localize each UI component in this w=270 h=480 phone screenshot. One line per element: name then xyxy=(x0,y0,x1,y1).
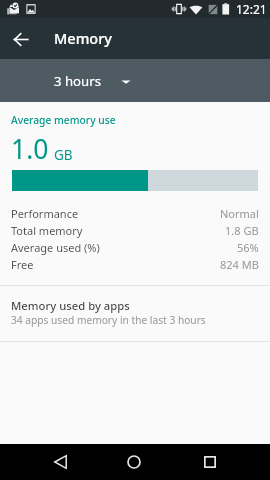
staticText: Free xyxy=(11,257,34,272)
button[interactable]: Navigate up xyxy=(3,21,39,57)
staticText: Average memory use xyxy=(11,113,116,127)
staticText: 3 hours xyxy=(54,72,102,90)
staticText: 824 MB xyxy=(220,257,259,272)
button[interactable]: Memory used by apps xyxy=(0,286,270,341)
button[interactable]: Home xyxy=(112,444,156,480)
button[interactable]: Back xyxy=(38,444,82,480)
staticText: Memory used by apps xyxy=(11,298,130,313)
button[interactable]: Recent apps xyxy=(188,444,232,480)
staticText: Average used (%) xyxy=(11,240,100,255)
staticText: Performance xyxy=(11,206,79,221)
staticText: 34 apps used memory in the last 3 hours xyxy=(11,313,206,327)
staticText: Memory xyxy=(54,28,113,48)
staticText: Total memory xyxy=(11,223,83,238)
staticText: GB xyxy=(54,146,73,164)
staticText: 1.8 GB xyxy=(225,223,259,238)
staticText: 12:21 xyxy=(236,1,267,17)
staticText: Normal xyxy=(220,206,259,221)
staticText: 1.0 xyxy=(11,131,49,167)
button[interactable]: 3 hours xyxy=(46,59,141,102)
staticText: 56% xyxy=(237,240,259,255)
